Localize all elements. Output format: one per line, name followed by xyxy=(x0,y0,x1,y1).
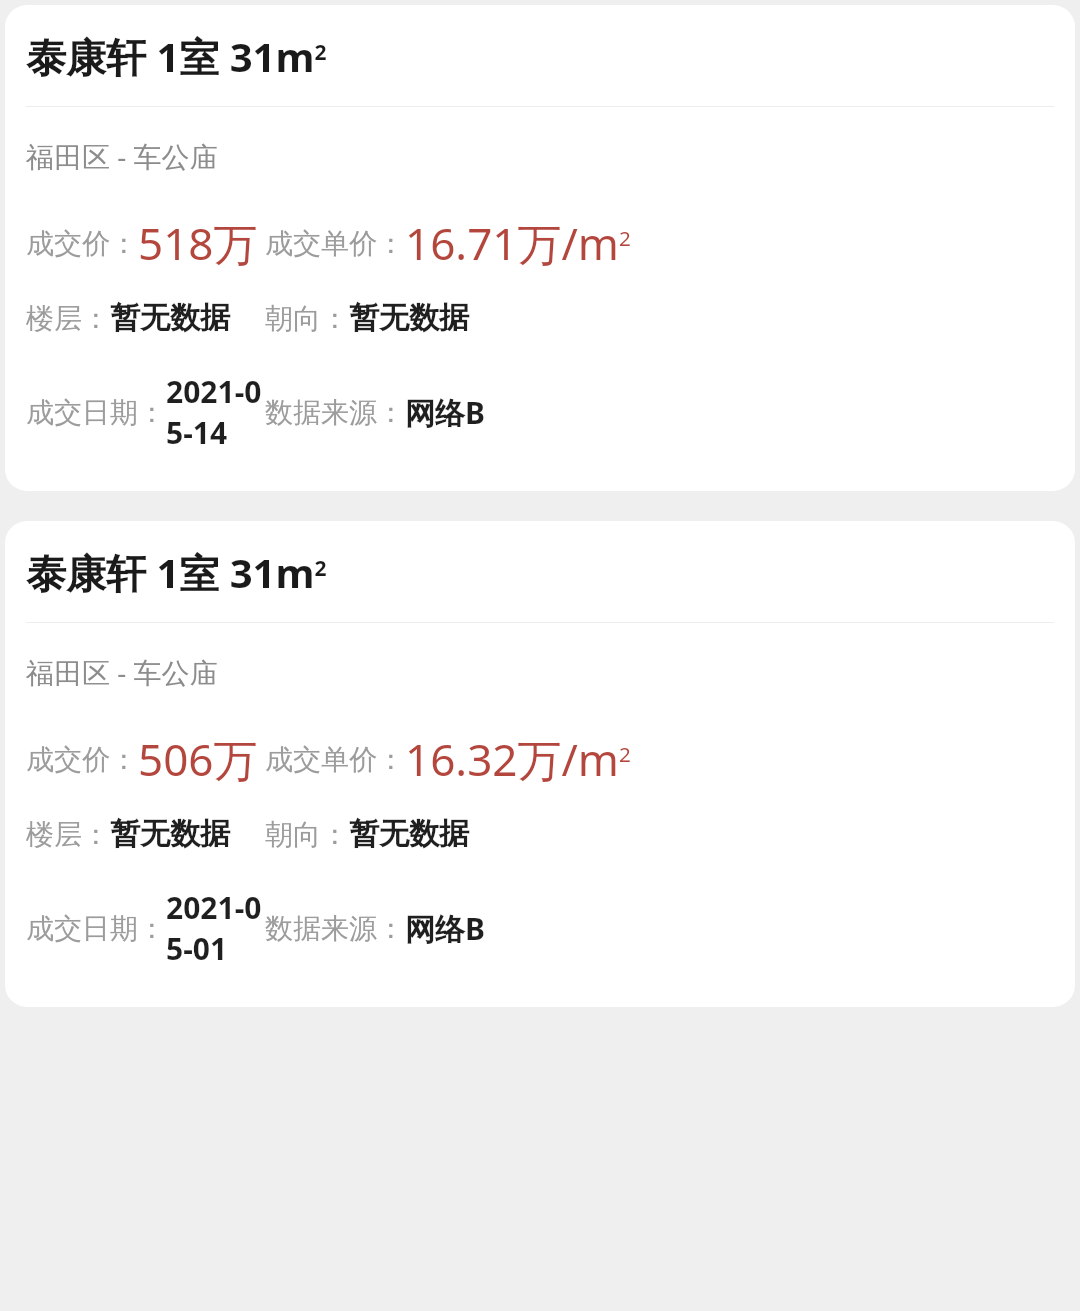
staticText: 16.32万/m2 xyxy=(405,729,631,789)
staticText: 成交价： xyxy=(26,226,138,261)
staticText: 506万 xyxy=(138,729,258,789)
staticText: 楼层： xyxy=(26,817,110,852)
staticText: 成交单价： xyxy=(265,742,405,777)
staticText: 朝向： xyxy=(265,817,349,852)
staticText: 成交单价： xyxy=(265,226,405,261)
staticText: 成交价： xyxy=(26,742,138,777)
staticText: 暂无数据 xyxy=(110,299,230,337)
staticText: 暂无数据 xyxy=(349,815,469,853)
staticText: 暂无数据 xyxy=(110,815,230,853)
staticText: 暂无数据 xyxy=(349,299,469,337)
staticText: 成交日期： xyxy=(26,395,166,430)
staticText: 福田区 - 车公庙 xyxy=(26,137,218,175)
staticText: 数据来源： xyxy=(265,911,405,946)
staticText: 网络B xyxy=(405,392,485,433)
staticText: 518万 xyxy=(138,213,258,273)
staticText: 泰康轩 1室 31m2 xyxy=(26,545,327,600)
staticText: 16.71万/m2 xyxy=(405,213,631,273)
staticText: 2021-05-14 xyxy=(166,371,265,453)
staticText: 数据来源： xyxy=(265,395,405,430)
staticText: 2021-05-01 xyxy=(166,887,265,969)
staticText: 朝向： xyxy=(265,301,349,336)
button[interactable]: 泰康轩 1室 31m2 xyxy=(5,521,1075,1007)
staticText: 泰康轩 1室 31m2 xyxy=(26,29,327,84)
staticText: 福田区 - 车公庙 xyxy=(26,653,218,691)
button[interactable]: 泰康轩 1室 31m2 xyxy=(5,5,1075,491)
staticText: 成交日期： xyxy=(26,911,166,946)
staticText: 楼层： xyxy=(26,301,110,336)
staticText: 网络B xyxy=(405,908,485,949)
